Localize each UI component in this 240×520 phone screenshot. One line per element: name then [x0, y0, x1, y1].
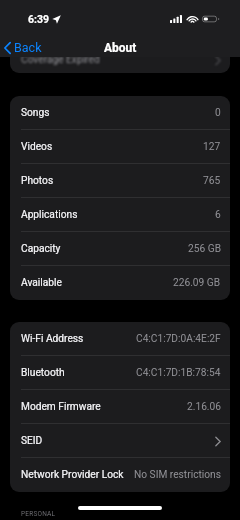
button[interactable]: Wi-Fi Address — [10, 322, 230, 356]
staticText: 765 — [203, 175, 221, 187]
button[interactable]: Videos — [10, 130, 230, 164]
button[interactable]: Capacity — [10, 232, 230, 266]
button[interactable]: Photos — [10, 164, 230, 198]
staticText: Available — [21, 277, 62, 289]
button[interactable]: Network Provider Lock — [10, 458, 230, 492]
staticText: 127 — [203, 141, 221, 153]
button[interactable]: Modem Firmware — [10, 390, 230, 424]
button[interactable]: Bluetooth — [10, 356, 230, 390]
staticText: C4:C1:7D:0A:4E:2F — [136, 333, 221, 345]
staticText: Wi-Fi Address — [21, 333, 84, 345]
staticText: Bluetooth — [21, 367, 65, 379]
staticText: Network Provider Lock — [21, 469, 124, 481]
staticText: C4:C1:7D:1B:78:54 — [136, 367, 221, 379]
staticText: Coverage Expired — [21, 54, 100, 66]
staticText: 2.16.06 — [187, 401, 221, 413]
staticText: PERSONAL — [21, 510, 56, 518]
button[interactable]: Coverage Expired — [10, 43, 230, 73]
button[interactable]: Songs — [10, 96, 230, 130]
staticText: 226.09 GB — [173, 277, 221, 289]
button[interactable]: SEID — [10, 424, 230, 458]
staticText: Capacity — [21, 243, 61, 255]
staticText: Modem Firmware — [21, 401, 101, 413]
button[interactable]: Applications — [10, 198, 230, 232]
staticText: 6:39 — [28, 13, 50, 25]
staticText: 0 — [215, 107, 221, 119]
staticText: 6 — [215, 209, 221, 221]
staticText: About — [104, 41, 137, 55]
staticText: SEID — [21, 435, 43, 447]
staticText: Songs — [21, 107, 50, 119]
staticText: Photos — [21, 175, 54, 187]
button[interactable]: Available — [10, 266, 230, 300]
staticText: Applications — [21, 209, 78, 221]
staticText: 256 GB — [188, 243, 221, 255]
staticText: No SIM restrictions — [134, 469, 221, 481]
staticText: Videos — [21, 141, 53, 153]
button[interactable]: Back — [4, 40, 42, 55]
staticText: Back — [14, 40, 42, 55]
